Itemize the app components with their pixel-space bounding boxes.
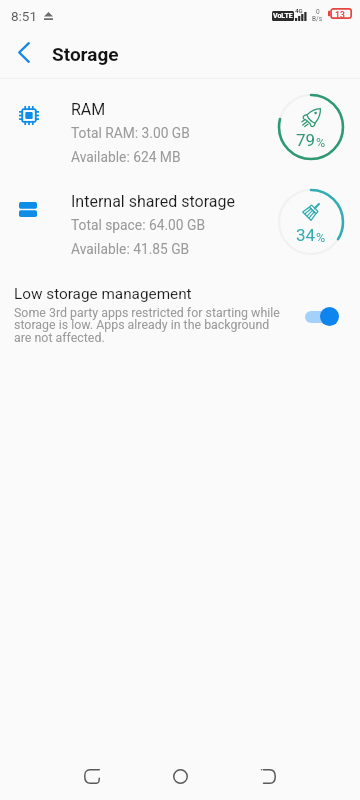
button[interactable]: Internal shared storage: [0, 188, 360, 280]
staticText: Internal shared storage: [71, 192, 235, 211]
staticText: 79: [296, 130, 316, 150]
staticText: B/s: [312, 15, 323, 23]
button[interactable]: RAM: [0, 96, 360, 188]
staticText: Total RAM: 3.00 GB: [71, 125, 190, 141]
staticText: 13: [335, 10, 345, 20]
staticText: Total space: 64.00 GB: [71, 217, 205, 233]
staticText: Available: 624 MB: [71, 149, 181, 165]
staticText: 8:51: [11, 8, 38, 24]
button[interactable]: Back: [6, 34, 42, 70]
staticText: Low storage management: [14, 285, 192, 303]
staticText: Available: 41.85 GB: [71, 241, 190, 257]
button[interactable]: Low storage management toggle: [302, 304, 342, 326]
button[interactable]: Back: [64, 748, 120, 800]
button[interactable]: Home: [152, 748, 208, 800]
staticText: %: [316, 230, 326, 245]
staticText: 34: [296, 225, 316, 245]
staticText: RAM: [71, 100, 106, 119]
staticText: Storage: [52, 43, 119, 65]
staticText: 0: [316, 8, 320, 16]
button[interactable]: Low storage management: [0, 281, 360, 351]
staticText: Some 3rd party apps restricted for start…: [14, 305, 286, 345]
staticText: 4G: [295, 7, 303, 14]
button[interactable]: Recent apps: [240, 748, 296, 800]
staticText: %: [316, 135, 326, 150]
staticText: VoLTE: [273, 12, 293, 20]
